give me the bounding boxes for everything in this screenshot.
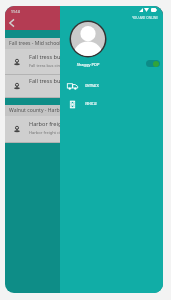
staticText: Harbor freight <box>29 120 67 128</box>
button[interactable]: Fall tress bus <box>5 49 163 75</box>
staticText: Fall tress bus circle <box>29 63 65 68</box>
staticText: Harbor freight circle <box>29 130 67 135</box>
staticText: VEHICLE <box>85 102 97 106</box>
button[interactable]: Back <box>7 18 17 28</box>
staticText: Fall tress bus <box>29 77 64 85</box>
staticText: Fall trees - Mid school <box>9 40 61 47</box>
button[interactable]: Online toggle <box>146 60 160 67</box>
staticText: Walnut county - Harbor <box>9 107 65 114</box>
staticText: YOU ARE ONLINE <box>60 16 158 20</box>
staticText: ONTRACK <box>85 84 99 88</box>
button[interactable]: ONTRACK <box>60 77 163 95</box>
staticText: 11:14 <box>11 9 20 14</box>
button[interactable]: Harbor freight <box>5 116 163 143</box>
button[interactable]: VEHICLE <box>60 95 163 113</box>
staticText: Shaggy PDP <box>69 62 107 67</box>
button[interactable]: Fall tress bus <box>5 75 163 98</box>
staticText: Fall tress bus <box>29 53 64 61</box>
